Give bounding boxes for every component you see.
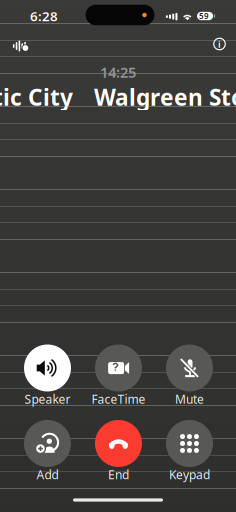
staticText: 59 xyxy=(199,11,209,21)
staticText: i xyxy=(218,38,221,50)
staticText: 14:25 xyxy=(100,62,136,82)
button[interactable]: End xyxy=(85,420,151,482)
staticText: Add xyxy=(36,466,58,482)
staticText: Speaker xyxy=(24,391,70,407)
staticText: FaceTime xyxy=(91,391,145,407)
staticText: End xyxy=(108,466,129,482)
button[interactable]: Call details xyxy=(207,32,231,56)
button[interactable]: Add xyxy=(14,420,80,482)
staticText: Mute xyxy=(175,391,204,407)
staticText: 6:28 xyxy=(30,7,58,25)
button[interactable]: Audio routing xyxy=(7,34,35,58)
staticText: Atlantic City xyxy=(0,82,73,112)
staticText: Walgreen Store xyxy=(94,82,236,112)
button[interactable]: Keypad xyxy=(156,420,222,482)
button[interactable]: Speaker xyxy=(14,344,80,406)
button[interactable]: Mute xyxy=(156,344,222,406)
staticText: Keypad xyxy=(169,466,210,482)
button[interactable]: FaceTime xyxy=(85,344,151,406)
